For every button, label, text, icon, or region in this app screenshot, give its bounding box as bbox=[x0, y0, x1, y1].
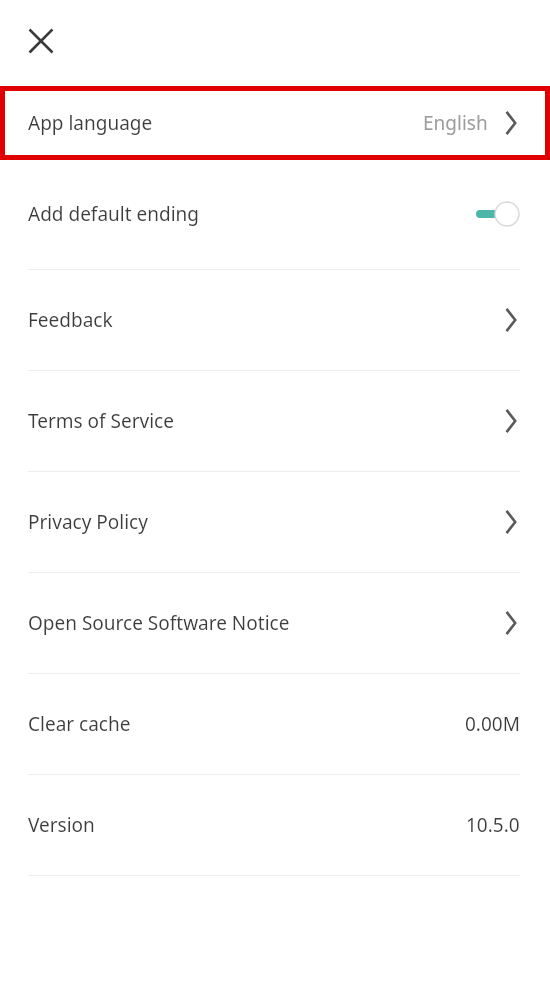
button[interactable]: Feedback bbox=[0, 270, 550, 370]
staticText: Add default ending bbox=[28, 201, 199, 227]
staticText: 10.5.0 bbox=[466, 812, 520, 838]
button[interactable]: Clear cache bbox=[0, 674, 550, 774]
staticText: Feedback bbox=[28, 307, 113, 333]
button[interactable]: App language bbox=[0, 86, 550, 159]
staticText: App language bbox=[28, 110, 153, 136]
button[interactable]: Terms of Service bbox=[0, 371, 550, 471]
staticText: Terms of Service bbox=[28, 408, 174, 434]
button[interactable]: Add default ending bbox=[0, 159, 550, 269]
staticText: Clear cache bbox=[28, 711, 131, 737]
button[interactable]: Privacy Policy bbox=[0, 472, 550, 572]
button[interactable]: Open Source Software Notice bbox=[0, 573, 550, 673]
staticText: Privacy Policy bbox=[28, 509, 148, 535]
staticText: 0.00M bbox=[465, 711, 520, 737]
button[interactable]: Version bbox=[0, 775, 550, 875]
staticText: Version bbox=[28, 812, 95, 838]
staticText: English bbox=[423, 110, 488, 136]
staticText: Open Source Software Notice bbox=[28, 610, 290, 636]
button[interactable] bbox=[476, 201, 520, 227]
button[interactable]: Close bbox=[29, 29, 53, 53]
